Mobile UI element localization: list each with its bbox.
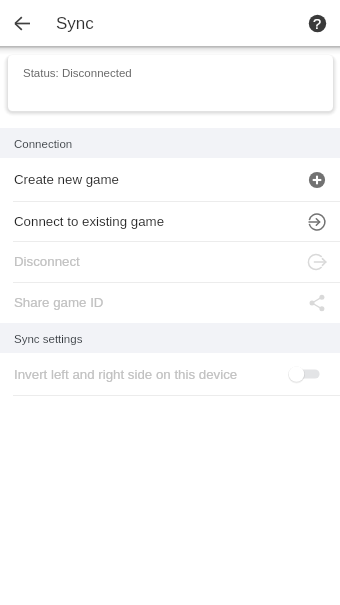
button[interactable]: Help [300,6,334,40]
button[interactable]: Invert left and right side on this devic… [0,353,340,395]
button[interactable]: Back [5,6,39,40]
staticText: Sync settings [14,333,83,346]
staticText: Connection [14,138,73,151]
button[interactable]: Connect to existing game [0,201,340,242]
staticText: Sync [56,14,94,33]
button[interactable]: Disconnect [0,241,340,282]
staticText: Share game ID [14,295,326,310]
staticText: Disconnect [14,254,326,269]
staticText: Connect to existing game [14,214,326,229]
staticText: Create new game [14,172,326,187]
button[interactable]: Share game ID [0,282,340,323]
staticText: Invert left and right side on this devic… [14,367,326,382]
staticText: ? [313,16,322,32]
staticText: Status: Disconnected [23,67,132,80]
button[interactable]: Create new game [0,158,340,201]
